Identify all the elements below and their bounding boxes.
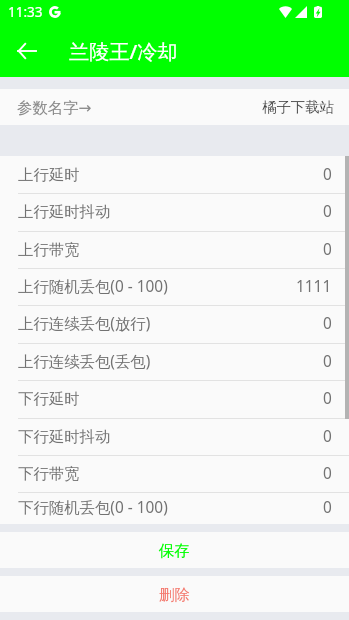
staticText: 0 [323,201,332,222]
staticText: 上行随机丢包(0 - 100) [18,276,168,297]
staticText: 下行随机丢包(0 - 100) [18,497,168,518]
staticText: 上行带宽 [18,240,80,259]
staticText: 上行连续丢包(放行) [18,313,151,334]
button[interactable]: 删除 [0,576,349,612]
staticText: 0 [323,388,332,409]
staticText: 橘子下载站 [262,98,334,116]
button[interactable]: 下行带宽 [0,455,349,492]
staticText: 下行延时 [18,389,80,408]
button[interactable]: 上行带宽 [0,231,349,268]
staticText: 1111 [296,276,332,297]
button[interactable]: 下行延时抖动 [0,418,349,455]
button[interactable]: 上行连续丢包(放行) [0,305,349,342]
staticText: 上行延时抖动 [18,202,111,221]
staticText: 0 [323,164,332,185]
button[interactable]: 上行延时 [0,156,349,193]
staticText: 下行延时抖动 [18,427,111,446]
staticText: 0 [323,497,332,518]
button[interactable]: 上行随机丢包(0 - 100) [0,268,349,305]
staticText: 删除 [159,585,190,604]
button[interactable]: 参数名字→ [0,89,349,125]
staticText: 上行延时 [18,165,80,184]
staticText: 0 [323,313,332,334]
staticText: 0 [323,239,332,260]
button[interactable]: 保存 [0,532,349,568]
button[interactable]: Back [5,29,49,73]
button[interactable]: 上行延时抖动 [0,193,349,230]
staticText: 0 [323,426,332,447]
staticText: 参数名字→ [17,98,92,117]
staticText: 0 [323,463,332,484]
staticText: 上行连续丢包(丢包) [18,351,151,372]
staticText: 下行带宽 [18,464,80,483]
staticText: 11:33 [8,3,43,21]
staticText: 兰陵王/冷却 [69,37,178,65]
button[interactable]: 上行连续丢包(丢包) [0,343,349,380]
button[interactable]: 下行随机丢包(0 - 100) [0,492,349,523]
staticText: 保存 [159,541,190,560]
button[interactable]: 下行延时 [0,380,349,417]
staticText: 0 [323,351,332,372]
